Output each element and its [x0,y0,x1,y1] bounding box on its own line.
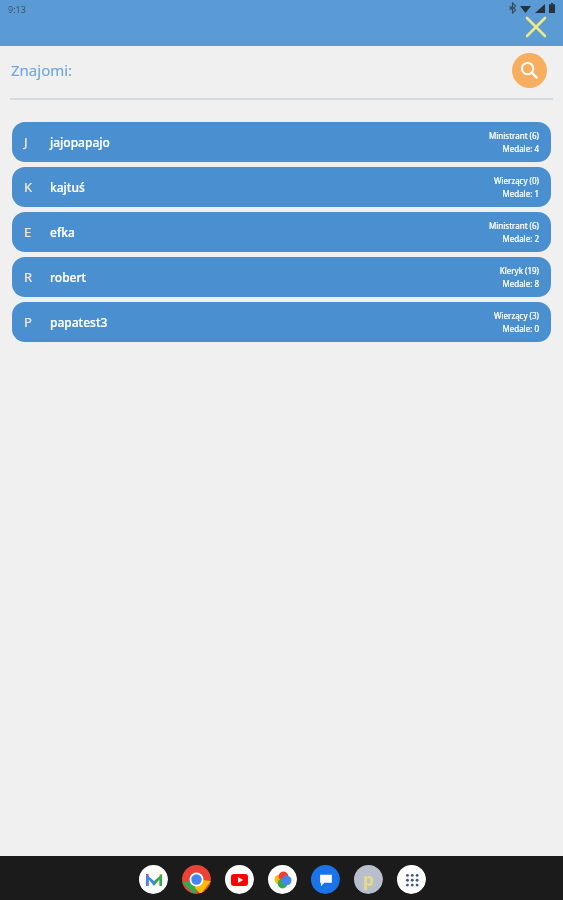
staticText: Medale: 0 [502,323,539,334]
staticText: Wierzący (0) [494,175,539,186]
staticText: Medale: 4 [502,143,539,154]
button[interactable]: Szukaj [512,53,547,88]
staticText: Ministrant (6) [489,220,539,231]
button[interactable]: J [12,122,551,162]
button[interactable]: K [12,167,551,207]
staticText: Kleryk (19) [499,265,539,276]
button[interactable]: E [12,212,551,252]
staticText: R [24,268,50,286]
button[interactable]: Zdjęcia Google [267,864,297,894]
button[interactable]: Zamknij [519,10,553,44]
staticText: p [363,868,374,891]
staticText: Medale: 1 [502,188,539,199]
staticText: jajopapajo [50,134,110,150]
staticText: Medale: 8 [502,278,539,289]
staticText: J [24,133,50,151]
staticText: Medale: 2 [502,233,539,244]
staticText: papatest3 [50,314,108,330]
staticText: Wierzący (3) [494,310,539,321]
staticText: robert [50,269,87,285]
button[interactable]: Gmail [138,864,168,894]
staticText: P [24,313,50,331]
button[interactable]: R [12,257,551,297]
button[interactable]: Wiadomości [310,864,340,894]
staticText: efka [50,224,75,240]
staticText: Znajomi: [11,60,73,80]
button[interactable]: Aplikacja P [353,864,383,894]
staticText: 9:13 [8,3,26,15]
button[interactable]: P [12,302,551,342]
button[interactable]: Wszystkie aplikacje [396,864,426,894]
staticText: E [24,223,50,241]
staticText: K [24,178,50,196]
staticText: Ministrant (6) [489,130,539,141]
staticText: kajtuś [50,179,85,195]
button[interactable]: YouTube [224,864,254,894]
button[interactable]: Chrome [181,864,211,894]
